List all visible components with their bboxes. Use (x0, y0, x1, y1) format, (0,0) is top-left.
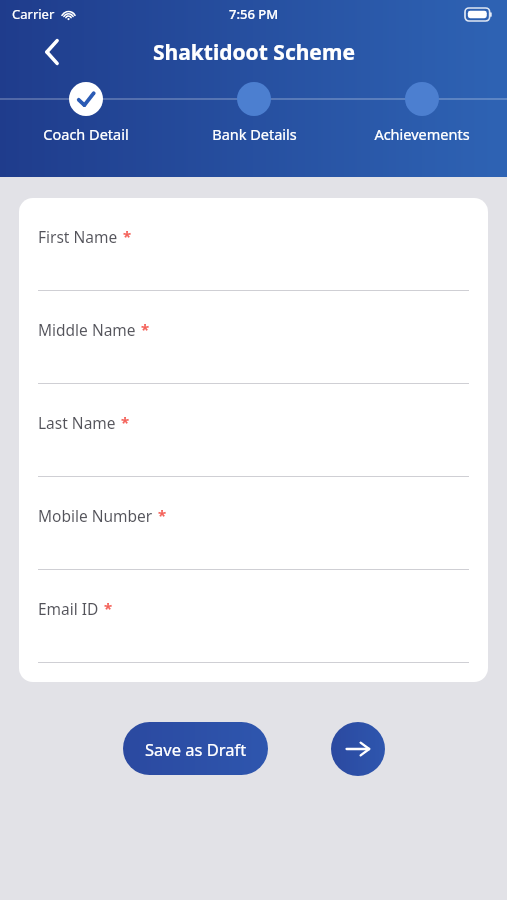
staticText: * (141, 319, 150, 339)
button[interactable]: Achievements (352, 122, 492, 146)
staticText: * (104, 598, 113, 618)
staticText: Last Name (38, 412, 116, 433)
button[interactable]: Back (32, 32, 72, 72)
staticText: Shaktidoot Scheme (153, 38, 355, 67)
staticText: First Name (38, 226, 118, 247)
staticText: * (121, 412, 130, 432)
staticText: Bank Details (212, 124, 297, 144)
button[interactable]: Coach Detail (16, 122, 156, 146)
staticText: * (123, 226, 132, 246)
staticText: Achievements (374, 124, 470, 144)
staticText: Save as Draft (145, 738, 247, 760)
button[interactable]: Next (331, 722, 385, 776)
button[interactable]: Save as Draft (123, 722, 268, 775)
button[interactable]: First Name (19, 198, 488, 291)
staticText: 7:56 PM (229, 5, 279, 23)
button[interactable]: Middle Name (19, 291, 488, 384)
staticText: * (158, 505, 167, 525)
button[interactable]: Mobile Number (19, 477, 488, 570)
staticText: Mobile Number (38, 505, 153, 526)
staticText: Coach Detail (43, 124, 129, 144)
button[interactable]: Last Name (19, 384, 488, 477)
staticText: Email ID (38, 598, 99, 619)
button[interactable]: Bank Details (184, 122, 324, 146)
staticText: Carrier (12, 5, 55, 23)
staticText: Middle Name (38, 319, 136, 340)
button[interactable]: Email ID (19, 570, 488, 663)
